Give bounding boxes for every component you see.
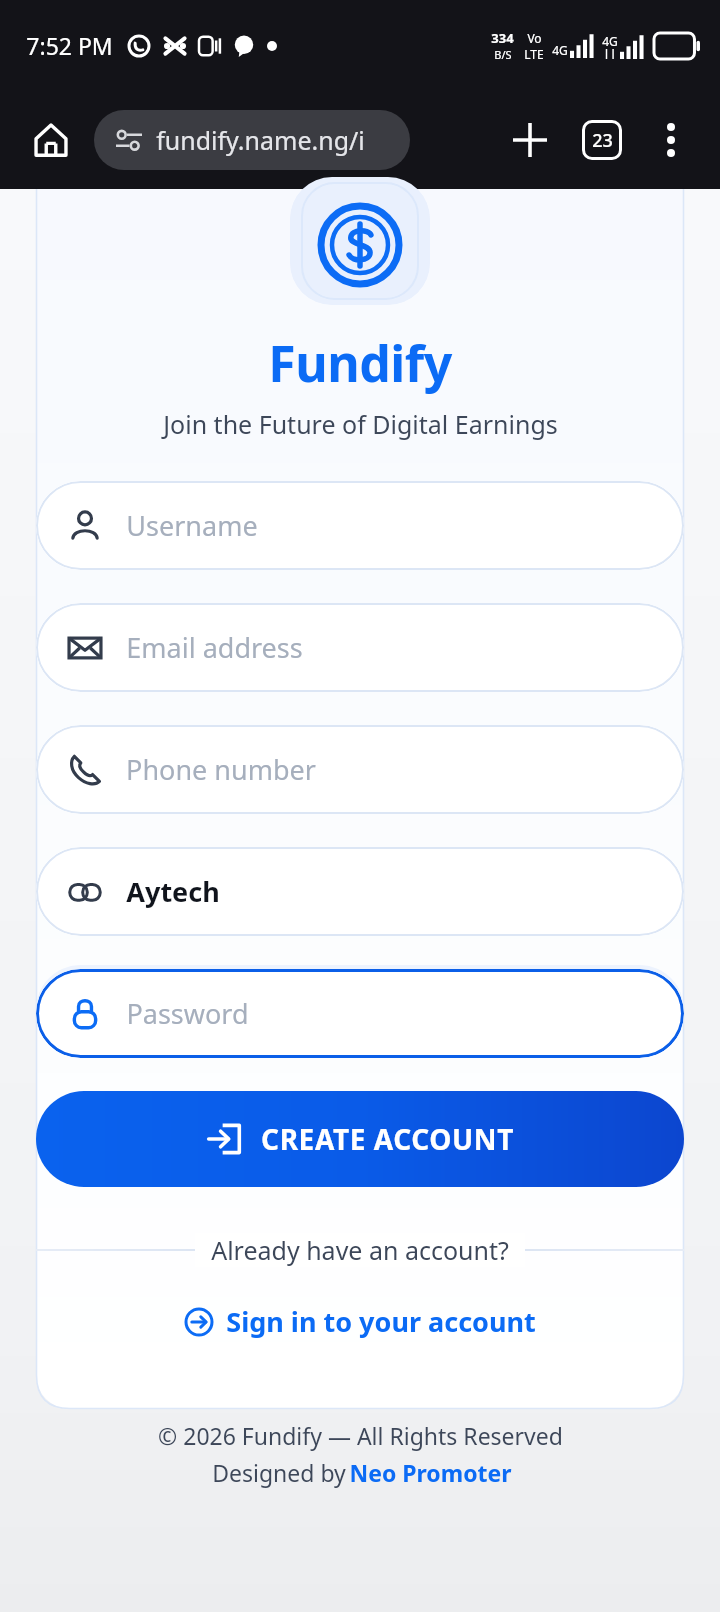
staticText: 334 — [491, 29, 514, 47]
staticText: Username — [126, 507, 258, 544]
staticText: Password — [126, 995, 249, 1032]
staticText: B/S — [494, 47, 512, 62]
staticText: Join the Future of Digital Earnings — [163, 407, 558, 441]
staticText: Email address — [126, 629, 303, 666]
staticText: 4G — [602, 33, 618, 49]
staticText: 7:52 PM — [26, 30, 113, 61]
staticText: Fundify — [268, 329, 452, 397]
button[interactable]: CREATE ACCOUNT — [36, 1091, 684, 1187]
button[interactable]: Email address — [36, 603, 684, 692]
button[interactable]: Tabs — [574, 112, 630, 168]
button[interactable]: More options — [644, 113, 698, 167]
button[interactable]: New tab — [502, 112, 558, 168]
button[interactable]: Sign in to your account — [170, 1295, 550, 1348]
button[interactable]: Home — [22, 111, 80, 169]
staticText: Designed by — [209, 1457, 349, 1488]
button[interactable]: Password — [36, 969, 684, 1058]
staticText: Aytech — [126, 873, 220, 910]
staticText: Already have an account? — [211, 1233, 509, 1267]
staticText: LTE — [524, 46, 544, 62]
staticText: fundify.name.ng/i — [156, 123, 365, 157]
button[interactable]: Username — [36, 481, 684, 570]
staticText: 23 — [592, 128, 613, 153]
staticText: 4G — [552, 42, 568, 58]
button[interactable]: fundify.name.ng/i — [94, 110, 410, 170]
button[interactable]: Aytech — [36, 847, 684, 936]
button[interactable]: Phone number — [36, 725, 684, 814]
button[interactable]: Neo Promoter — [349, 1457, 512, 1488]
staticText: Sign in to your account — [226, 1303, 536, 1340]
staticText: Phone number — [126, 751, 316, 788]
staticText: © 2026 Fundify — All Rights Reserved — [158, 1420, 563, 1451]
staticText: Vo — [527, 30, 542, 46]
staticText: CREATE ACCOUNT — [261, 1120, 514, 1158]
